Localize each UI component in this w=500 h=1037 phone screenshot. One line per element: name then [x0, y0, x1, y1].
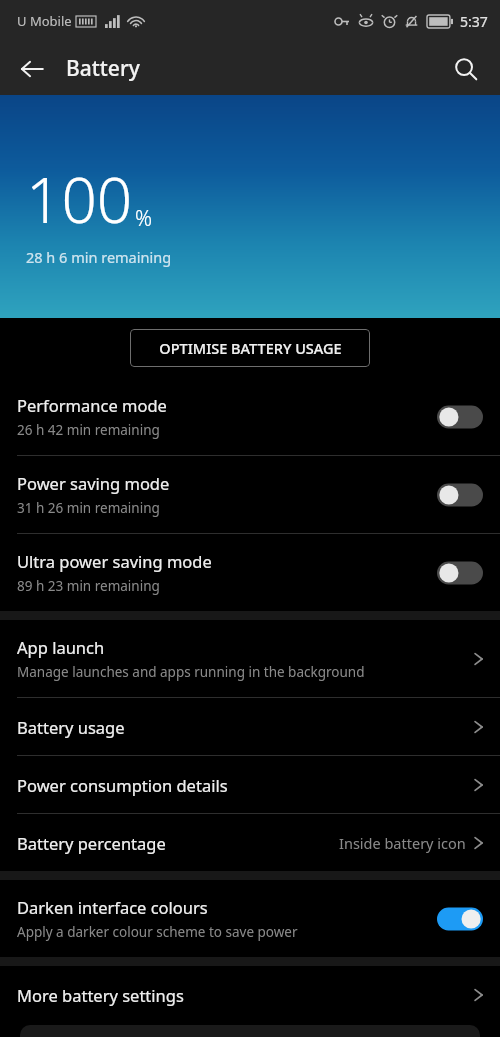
staticText: Battery [66, 54, 140, 83]
staticText: Manage launches and apps running in the … [17, 663, 365, 681]
staticText: Battery percentage [17, 832, 166, 854]
button[interactable]: Toggle off [437, 404, 483, 430]
button[interactable]: Search [442, 45, 490, 93]
button[interactable]: More battery settings [0, 966, 500, 1023]
staticText: Performance mode [17, 394, 167, 416]
button[interactable]: Toggle off [437, 560, 483, 586]
button[interactable]: Performance mode [0, 378, 500, 455]
staticText: Power saving mode [17, 472, 170, 494]
button[interactable]: Toggle off [437, 482, 483, 508]
staticText: Battery usage [17, 716, 125, 738]
staticText: 28 h 6 min remaining [26, 247, 172, 267]
staticText: 89 h 23 min remaining [17, 577, 160, 595]
staticText: OPTIMISE BATTERY USAGE [159, 338, 342, 358]
staticText: More battery settings [17, 984, 184, 1006]
button[interactable]: Toggle on [437, 906, 483, 932]
button[interactable]: Ultra power saving mode [0, 534, 500, 611]
button[interactable]: Back [8, 45, 56, 93]
button[interactable]: Darken interface colours [0, 880, 500, 957]
staticText: 5:37 [460, 12, 488, 31]
button[interactable]: App launch [0, 620, 500, 697]
staticText: % [135, 204, 153, 233]
staticText: Darken interface colours [17, 896, 208, 918]
staticText: 26 h 42 min remaining [17, 421, 160, 439]
button[interactable]: Power saving mode [0, 456, 500, 533]
staticText: App launch [17, 636, 105, 658]
button[interactable]: OPTIMISE BATTERY USAGE [130, 329, 370, 367]
button[interactable]: Power consumption details [0, 756, 500, 813]
staticText: Apply a darker colour scheme to save pow… [17, 923, 298, 941]
button[interactable]: Battery percentage [0, 814, 500, 871]
staticText: Ultra power saving mode [17, 550, 212, 572]
staticText: 100 [26, 157, 133, 241]
staticText: U Mobile [17, 12, 72, 30]
staticText: 31 h 26 min remaining [17, 499, 160, 517]
staticText: Inside battery icon [339, 833, 466, 853]
button[interactable]: Battery usage [0, 698, 500, 755]
staticText: Power consumption details [17, 774, 228, 796]
